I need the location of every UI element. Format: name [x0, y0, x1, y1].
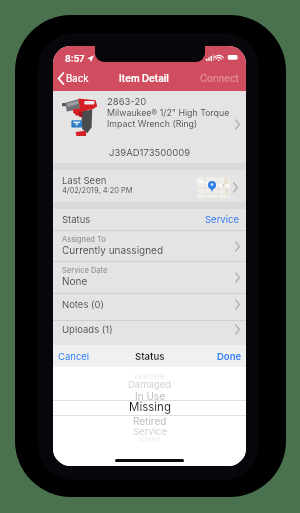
staticText: Service Date — [62, 266, 108, 275]
button[interactable]: Done — [213, 347, 246, 366]
staticText: Impact Wrench (Ring) — [107, 118, 198, 129]
button[interactable]: Uploads (1) — [53, 321, 246, 345]
staticText: Done — [217, 351, 242, 362]
staticText: 2863-20 — [107, 96, 147, 107]
button[interactable]: 2863-20 — [53, 91, 246, 140]
staticText: Currently unassigned — [62, 244, 164, 256]
staticText: Stolen — [138, 435, 161, 444]
staticText: Notes (0) — [62, 299, 105, 310]
button[interactable]: Notes (0) — [53, 294, 246, 320]
staticText: Uploads (1) — [62, 324, 113, 335]
staticText: J39AD173500009 — [109, 147, 191, 158]
staticText: Available — [134, 372, 166, 381]
button[interactable]: Cancel — [53, 347, 95, 366]
staticText: Back — [66, 73, 89, 85]
staticText: 8:57 — [65, 53, 85, 64]
staticText: Connect — [200, 73, 239, 85]
staticText: Item Detail — [119, 73, 169, 85]
button[interactable]: Service Date — [53, 262, 246, 293]
staticText: Missing — [129, 400, 171, 414]
staticText: Service — [205, 214, 239, 225]
staticText: Damaged — [128, 379, 172, 390]
staticText: Last Seen — [62, 175, 107, 186]
staticText: Milwaukee® 1/2" High Torque — [107, 107, 230, 118]
staticText: Status — [135, 351, 165, 362]
button[interactable]: Service — [198, 210, 246, 229]
button[interactable]: Assigned To — [53, 231, 246, 261]
staticText: Service — [133, 426, 167, 437]
staticText: Status — [62, 214, 91, 225]
staticText: Cancel — [58, 351, 90, 362]
button[interactable]: Last Seen — [53, 170, 246, 202]
staticText: Retired — [133, 415, 167, 427]
staticText: 4/02/2019, 4:20 PM — [62, 186, 133, 195]
button[interactable]: Connect — [193, 66, 246, 91]
staticText: In Use — [135, 390, 165, 402]
button[interactable]: Back — [53, 66, 95, 91]
staticText: None — [62, 275, 88, 287]
staticText: Assigned To — [62, 235, 106, 244]
